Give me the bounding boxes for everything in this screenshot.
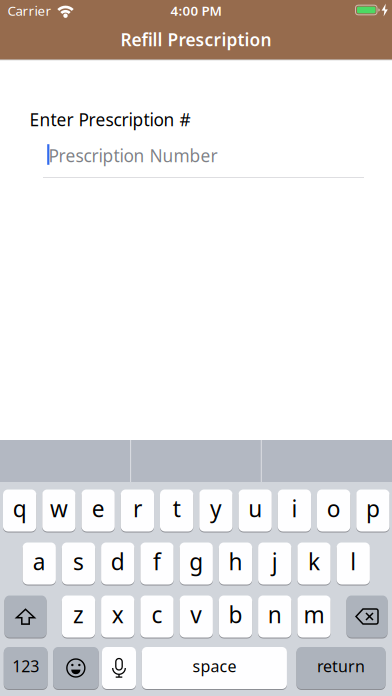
button[interactable]: f bbox=[140, 542, 174, 585]
button[interactable]: return bbox=[296, 646, 385, 689]
button[interactable]: j bbox=[258, 542, 291, 585]
staticText: return bbox=[317, 655, 365, 677]
button[interactable]: g bbox=[180, 542, 213, 585]
staticText: 123 bbox=[12, 655, 39, 677]
staticText: r bbox=[133, 493, 142, 523]
button[interactable]: c bbox=[140, 595, 174, 638]
button[interactable]: z bbox=[62, 595, 95, 638]
button[interactable]: d bbox=[101, 542, 134, 585]
staticText: Carrier bbox=[7, 2, 51, 19]
button[interactable]: Delete bbox=[346, 595, 387, 638]
button[interactable]: k bbox=[297, 542, 331, 585]
button[interactable]: y bbox=[199, 489, 232, 532]
staticText: t bbox=[173, 493, 181, 523]
button[interactable]: q bbox=[3, 489, 36, 532]
button[interactable]: t bbox=[160, 489, 193, 532]
staticText: f bbox=[153, 546, 161, 576]
staticText: b bbox=[228, 599, 242, 629]
button[interactable]: 123 bbox=[4, 646, 47, 689]
staticText: o bbox=[327, 493, 341, 523]
button[interactable]: p bbox=[356, 489, 389, 532]
button[interactable]: e bbox=[81, 489, 115, 532]
staticText: w bbox=[50, 493, 68, 523]
button[interactable]: Dictate bbox=[102, 646, 136, 689]
staticText: x bbox=[112, 599, 124, 629]
staticText: a bbox=[33, 546, 46, 576]
staticText: space bbox=[192, 655, 236, 677]
button[interactable]: Emoji bbox=[53, 646, 99, 689]
staticText: m bbox=[303, 599, 324, 629]
button[interactable]: h bbox=[219, 542, 252, 585]
staticText: l bbox=[350, 546, 356, 576]
button[interactable]: x bbox=[101, 595, 134, 638]
button[interactable]: l bbox=[337, 542, 370, 585]
staticText: v bbox=[190, 599, 202, 629]
staticText: p bbox=[366, 493, 380, 523]
button[interactable]: m bbox=[297, 595, 331, 638]
button[interactable]: a bbox=[23, 542, 56, 585]
staticText: q bbox=[13, 493, 27, 523]
button[interactable]: i bbox=[278, 489, 311, 532]
staticText: n bbox=[268, 599, 282, 629]
button[interactable]: w bbox=[42, 489, 75, 532]
staticText: 4:00 PM bbox=[170, 2, 221, 19]
staticText: j bbox=[272, 546, 278, 576]
staticText: y bbox=[210, 493, 222, 523]
button[interactable]: s bbox=[62, 542, 95, 585]
staticText: i bbox=[291, 493, 297, 523]
staticText: c bbox=[151, 599, 162, 629]
staticText: e bbox=[92, 493, 105, 523]
button[interactable]: r bbox=[121, 489, 154, 532]
staticText: Enter Prescription # bbox=[29, 108, 190, 131]
button[interactable]: n bbox=[258, 595, 291, 638]
button[interactable]: Shift bbox=[4, 595, 46, 638]
button[interactable]: o bbox=[317, 489, 350, 532]
button[interactable]: v bbox=[180, 595, 213, 638]
button[interactable]: Prescription Number bbox=[43, 140, 364, 178]
staticText: u bbox=[248, 493, 262, 523]
staticText: Prescription Number bbox=[49, 144, 218, 167]
button[interactable]: space bbox=[142, 646, 287, 689]
staticText: s bbox=[73, 546, 84, 576]
staticText: Refill Prescription bbox=[120, 28, 271, 51]
staticText: k bbox=[308, 546, 320, 576]
staticText: d bbox=[111, 546, 125, 576]
button[interactable]: u bbox=[238, 489, 272, 532]
staticText: h bbox=[228, 546, 242, 576]
button[interactable]: b bbox=[219, 595, 252, 638]
staticText: g bbox=[189, 546, 203, 576]
staticText: z bbox=[73, 599, 84, 629]
